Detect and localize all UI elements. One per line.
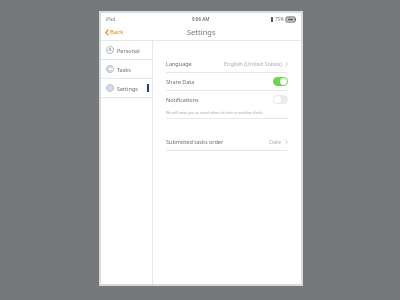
button[interactable]: Language — [166, 55, 288, 72]
staticText: Share Data — [166, 78, 195, 85]
staticText: iPad — [106, 16, 116, 22]
staticText: English (United States) — [224, 60, 282, 67]
staticText: Settings — [117, 85, 138, 92]
staticText: 75% — [275, 16, 284, 22]
button[interactable]: Share Data — [166, 73, 288, 90]
staticText: 9:06 AM — [192, 16, 210, 22]
staticText: Back — [110, 28, 124, 36]
button[interactable]: Settings — [101, 79, 152, 97]
staticText: Date — [269, 138, 282, 145]
button[interactable]: Tasks — [101, 60, 152, 78]
staticText: Submitted tasks order — [166, 138, 224, 145]
staticText: Personal — [117, 47, 140, 54]
button[interactable]: Back — [105, 28, 124, 36]
other: Notifications off — [273, 95, 288, 104]
button[interactable]: Personal — [101, 41, 152, 59]
staticText: Settings — [187, 27, 216, 37]
staticText: Notifications — [166, 96, 199, 103]
staticText: Language — [166, 60, 192, 67]
button[interactable]: Notifications — [166, 91, 288, 108]
other: Share Data on — [273, 77, 288, 86]
staticText: Tasks — [117, 66, 131, 73]
button[interactable]: Submitted tasks order — [166, 133, 288, 150]
staticText: We will send you an email when its time … — [166, 110, 263, 115]
